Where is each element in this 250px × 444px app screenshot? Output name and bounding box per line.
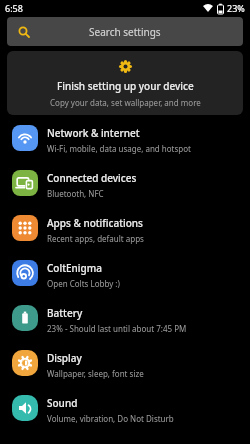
staticText: Network & internet bbox=[47, 126, 140, 140]
staticText: Apps & notifications bbox=[47, 216, 143, 230]
button[interactable]: Apps & notifications bbox=[0, 205, 250, 250]
staticText: Display bbox=[47, 351, 82, 365]
button[interactable]: Network & internet bbox=[0, 115, 250, 160]
button[interactable]: Display bbox=[0, 340, 250, 385]
staticText: Connected devices bbox=[47, 171, 137, 185]
staticText: Recent apps, default apps bbox=[47, 233, 144, 244]
staticText: Wallpaper, sleep, font size bbox=[47, 368, 144, 379]
staticText: Wi-Fi, mobile, data usage, and hotspot bbox=[47, 143, 191, 154]
button[interactable]: Search settings bbox=[7, 17, 243, 46]
staticText: Search settings bbox=[89, 25, 161, 39]
staticText: Copy your data, set wallpaper, and more bbox=[50, 97, 201, 108]
button[interactable]: ColtEnigma bbox=[0, 250, 250, 295]
staticText: Sound bbox=[47, 396, 78, 410]
button[interactable]: Connected devices bbox=[0, 160, 250, 205]
staticText: Volume, vibration, Do Not Disturb bbox=[47, 413, 174, 424]
staticText: Open Colts Lobby :) bbox=[47, 278, 120, 289]
button[interactable]: Battery bbox=[0, 295, 250, 340]
staticText: 23% bbox=[227, 2, 245, 14]
staticText: 23% - Should last until about 7:45 PM bbox=[47, 323, 187, 334]
staticText: 6:58 bbox=[5, 2, 23, 14]
staticText: Bluetooth, NFC bbox=[47, 188, 104, 199]
staticText: Finish setting up your device bbox=[57, 79, 194, 93]
button[interactable]: Sound bbox=[0, 385, 250, 430]
staticText: ColtEnigma bbox=[47, 261, 102, 275]
button[interactable]: Finish setting up your device bbox=[7, 51, 243, 115]
staticText: Battery bbox=[47, 306, 83, 320]
